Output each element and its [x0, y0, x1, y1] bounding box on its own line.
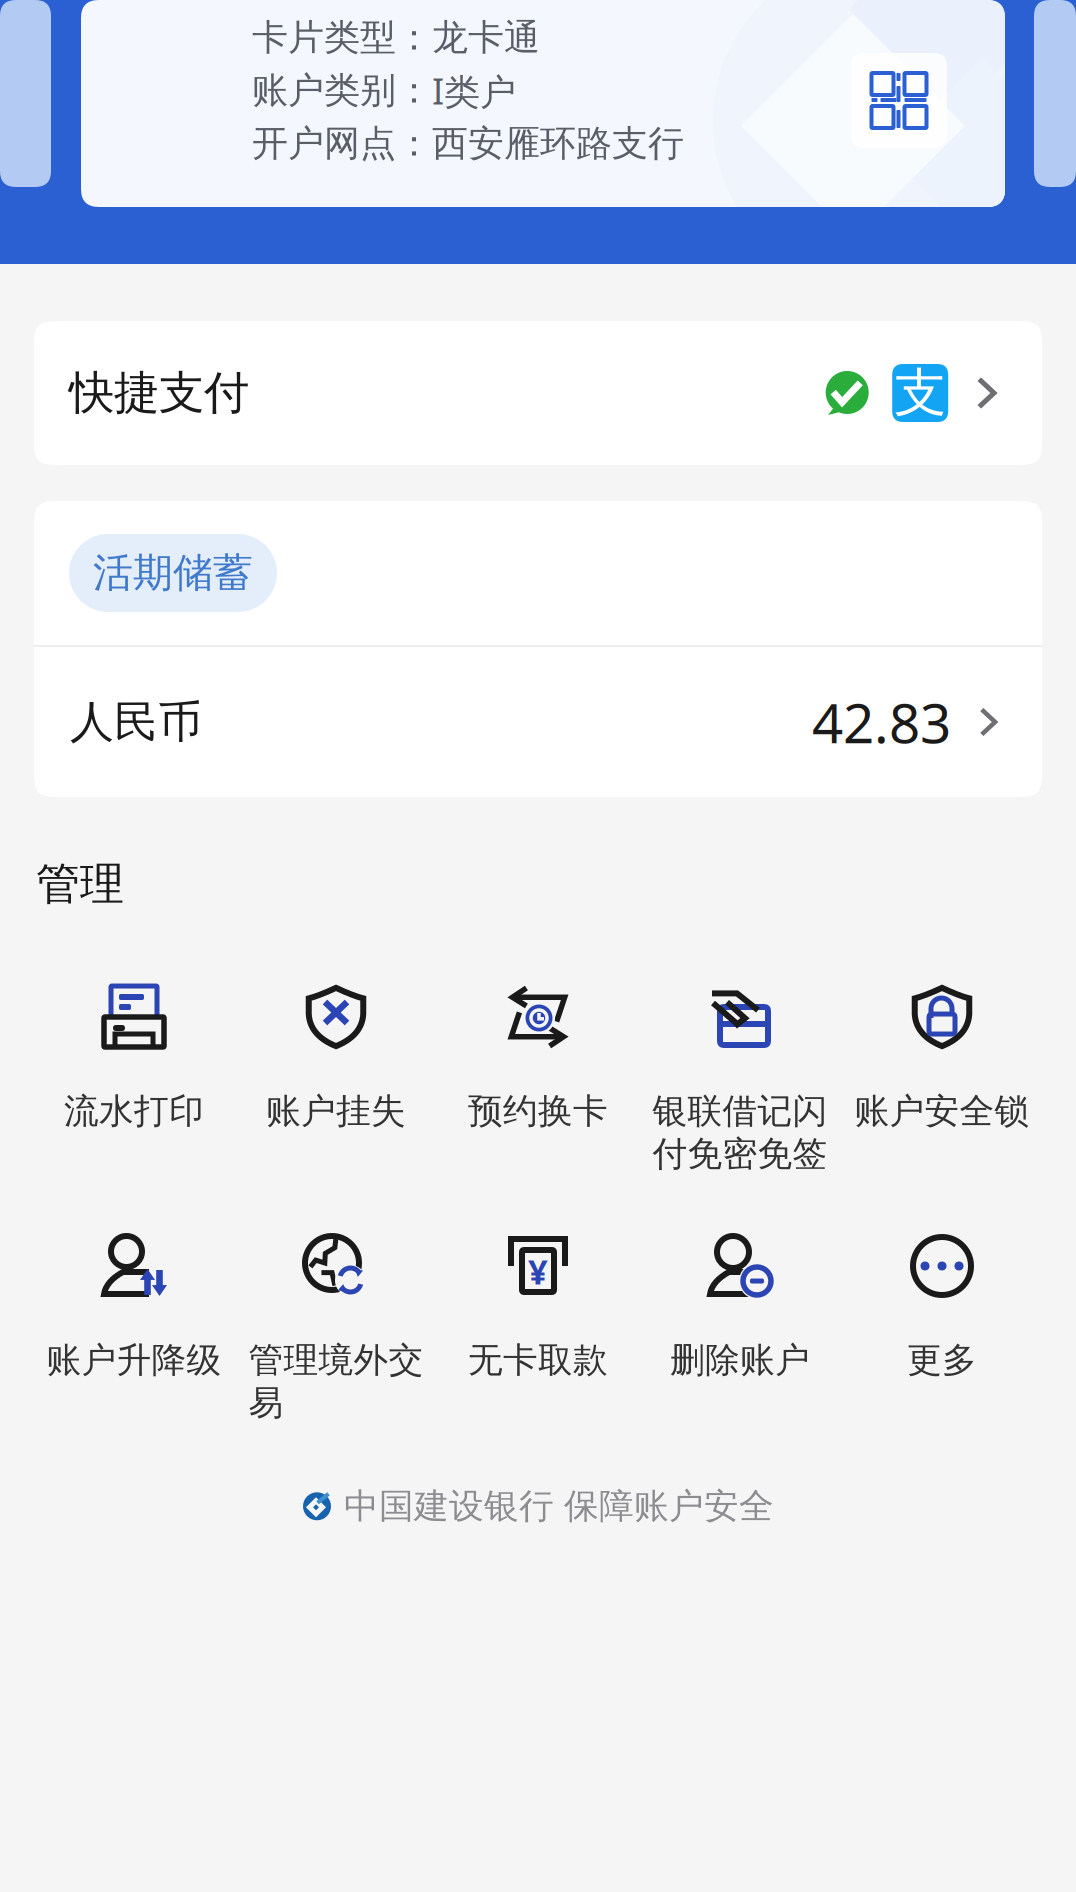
button[interactable]: 预约换卡 [437, 985, 639, 1234]
button[interactable]: 卡片类型： [81, 0, 1005, 207]
button[interactable]: 快捷支付 [34, 321, 1042, 465]
staticText: I类户 [432, 66, 516, 114]
button[interactable]: 账户升降级 [33, 1234, 235, 1483]
staticText: 管理境外交易 [248, 1339, 423, 1424]
staticText: 龙卡通 [432, 15, 540, 59]
staticText: 卡片类型： [252, 15, 432, 59]
button[interactable]: 更多 [841, 1234, 1043, 1483]
staticText: 预约换卡 [468, 1090, 608, 1133]
staticText: 中国建设银行 保障账户安全 [344, 1485, 774, 1528]
staticText: ¥ [528, 1248, 548, 1294]
staticText: 流水打印 [64, 1090, 204, 1133]
staticText: 银联借记闪付免密免签 [652, 1090, 827, 1175]
staticText: 人民币 [70, 695, 202, 749]
staticText: 西安雁环路支行 [432, 121, 684, 166]
staticText: 账户挂失 [266, 1090, 406, 1133]
staticText: 更多 [907, 1339, 977, 1382]
staticText: 账户类别： [252, 68, 432, 113]
staticText: 无卡取款 [468, 1339, 608, 1382]
button[interactable]: 银联借记闪付免密免签 [639, 985, 841, 1234]
button[interactable]: 账户挂失 [235, 985, 437, 1234]
button[interactable]: 管理境外交易 [235, 1234, 437, 1483]
staticText: 账户升降级 [46, 1339, 221, 1382]
button[interactable]: 账户安全锁 [841, 985, 1043, 1234]
staticText: 删除账户 [670, 1339, 810, 1382]
staticText: 开户网点： [252, 121, 432, 166]
button[interactable]: 删除账户 [639, 1234, 841, 1483]
button[interactable]: 流水打印 [33, 985, 235, 1234]
staticText: 管理 [36, 857, 124, 911]
staticText: 账户安全锁 [854, 1090, 1029, 1133]
staticText: 42.83 [812, 686, 951, 758]
staticText: 支 [894, 361, 946, 425]
staticText: 快捷支付 [69, 365, 249, 421]
button[interactable]: ¥ [437, 1234, 639, 1483]
staticText: 活期储蓄 [93, 548, 253, 597]
button[interactable]: 人民币 [34, 647, 1042, 797]
